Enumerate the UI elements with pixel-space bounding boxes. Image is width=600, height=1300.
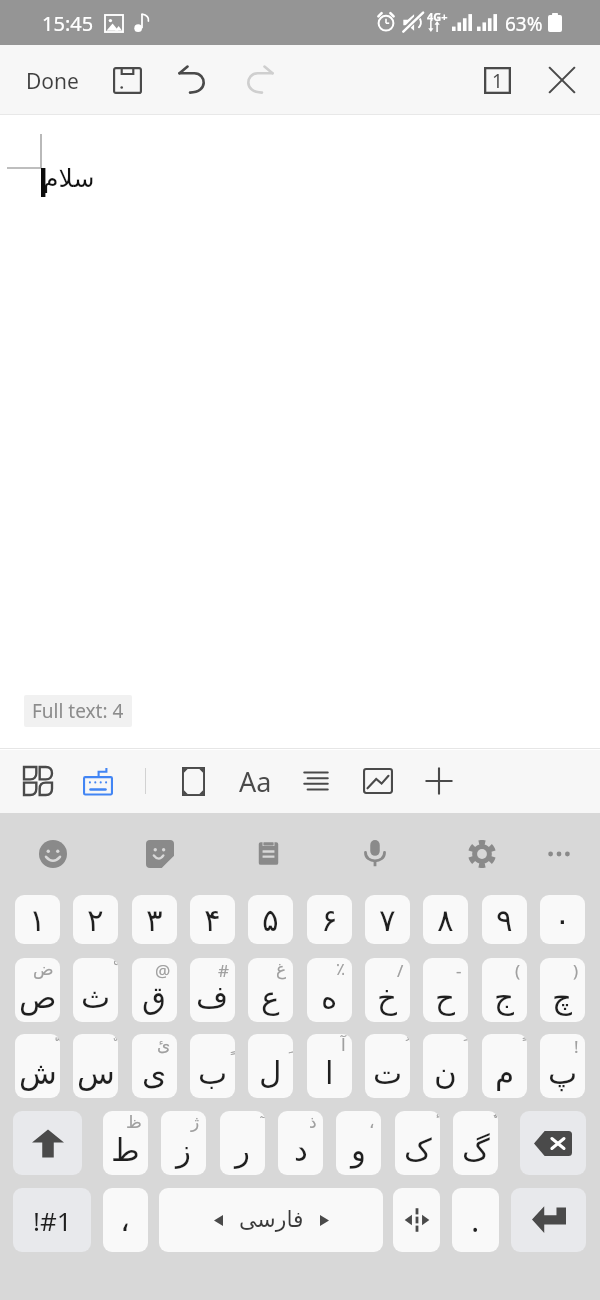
button[interactable]: Page setup bbox=[169, 758, 217, 804]
staticText: م bbox=[495, 1055, 515, 1091]
staticText: ظ bbox=[126, 1112, 142, 1132]
button[interactable]: Move cursor bbox=[393, 1188, 440, 1252]
staticText: ۳ bbox=[146, 902, 163, 938]
button[interactable]: ِ bbox=[248, 1034, 293, 1098]
button[interactable]: َ bbox=[423, 1034, 468, 1098]
staticText: ل bbox=[259, 1055, 282, 1091]
button[interactable]: ُ bbox=[365, 1034, 410, 1098]
button[interactable]: ! bbox=[540, 1034, 585, 1098]
staticText: آ bbox=[341, 1035, 346, 1055]
button[interactable]: Close bbox=[538, 58, 586, 102]
button[interactable]: ّ bbox=[15, 1034, 60, 1098]
button[interactable]: ذ bbox=[278, 1111, 323, 1175]
button[interactable]: More options bbox=[534, 829, 584, 879]
staticText: ۷ bbox=[379, 902, 396, 938]
button[interactable]: . bbox=[452, 1188, 499, 1252]
staticText: خ bbox=[377, 979, 398, 1015]
button[interactable]: ۲ bbox=[73, 895, 118, 944]
staticText: 63% bbox=[505, 11, 543, 37]
staticText: ر bbox=[235, 1132, 250, 1168]
staticText: غ bbox=[276, 959, 287, 979]
staticText: سلام bbox=[43, 164, 95, 193]
staticText: ع bbox=[261, 979, 280, 1015]
staticText: ( bbox=[515, 959, 521, 982]
button[interactable]: ۱ bbox=[15, 895, 60, 944]
staticText: فارسی bbox=[239, 1207, 304, 1233]
button[interactable]: Full text: 4 bbox=[24, 695, 132, 727]
button[interactable]: ٓ bbox=[220, 1111, 265, 1175]
staticText: ، bbox=[369, 1112, 375, 1132]
staticText: گ bbox=[462, 1132, 490, 1168]
button[interactable]: Enter bbox=[511, 1188, 586, 1252]
button[interactable]: Backspace bbox=[520, 1111, 586, 1175]
button[interactable]: Shift bbox=[13, 1111, 82, 1175]
staticText: ی bbox=[142, 1055, 167, 1091]
staticText: چ bbox=[552, 979, 573, 1015]
button[interactable]: ۳ bbox=[132, 895, 177, 944]
button[interactable]: ( bbox=[482, 958, 527, 1022]
staticText: ٪ bbox=[336, 959, 346, 979]
button[interactable]: Redo bbox=[231, 58, 287, 102]
button[interactable]: Apps bbox=[14, 758, 62, 804]
button[interactable]: Done bbox=[14, 58, 91, 105]
button[interactable]: ٪ bbox=[307, 958, 352, 1022]
button[interactable]: ٔ bbox=[395, 1111, 440, 1175]
staticText: ک bbox=[404, 1132, 432, 1168]
button[interactable]: Settings bbox=[457, 829, 507, 879]
button[interactable]: Undo bbox=[164, 58, 220, 102]
button[interactable]: ژ bbox=[161, 1111, 206, 1175]
button[interactable]: ٍ bbox=[190, 1034, 235, 1098]
button[interactable]: ، bbox=[336, 1111, 381, 1175]
button[interactable]: Alignment bbox=[292, 758, 340, 804]
staticText: ف bbox=[196, 979, 229, 1015]
staticText: Full text: 4 bbox=[32, 698, 124, 724]
staticText: ح bbox=[435, 979, 456, 1015]
button[interactable]: Add bbox=[415, 758, 463, 804]
button[interactable]: ٗ bbox=[453, 1111, 498, 1175]
button[interactable]: ً bbox=[482, 1034, 527, 1098]
staticText: ت bbox=[373, 1055, 403, 1091]
button[interactable]: Clipboard bbox=[243, 828, 293, 878]
button[interactable]: ظ bbox=[103, 1111, 148, 1175]
button[interactable]: Insert image bbox=[354, 758, 402, 804]
button[interactable]: ، bbox=[103, 1188, 148, 1252]
button[interactable]: ٌ bbox=[73, 1034, 118, 1098]
button[interactable]: ض bbox=[15, 958, 60, 1022]
staticText: ۴ bbox=[204, 902, 221, 938]
button[interactable]: # bbox=[190, 958, 235, 1022]
button[interactable]: - bbox=[423, 958, 468, 1022]
button[interactable]: Voice input bbox=[350, 828, 400, 878]
button[interactable]: Font bbox=[231, 758, 279, 804]
staticText: ص bbox=[19, 979, 57, 1015]
button[interactable]: فارسی bbox=[159, 1188, 383, 1252]
staticText: ا bbox=[325, 1055, 334, 1091]
button[interactable]: ْ bbox=[73, 958, 118, 1022]
staticText: ۲ bbox=[87, 902, 104, 938]
button[interactable]: غ bbox=[248, 958, 293, 1022]
staticText: ۹ bbox=[496, 902, 513, 938]
button[interactable]: @ bbox=[132, 958, 177, 1022]
staticText: !#1 bbox=[33, 1203, 72, 1238]
button[interactable]: ۹ bbox=[482, 895, 527, 944]
staticText: ئ bbox=[157, 1035, 171, 1055]
staticText: ق bbox=[142, 979, 167, 1015]
button[interactable]: ئ bbox=[132, 1034, 177, 1098]
button[interactable]: !#1 bbox=[13, 1188, 91, 1252]
staticText: ب bbox=[198, 1055, 228, 1091]
staticText: Done bbox=[26, 67, 79, 96]
button[interactable]: ) bbox=[540, 958, 585, 1022]
button[interactable]: ۸ bbox=[423, 895, 468, 944]
button[interactable]: / bbox=[365, 958, 410, 1022]
button[interactable]: ۵ bbox=[248, 895, 293, 944]
button[interactable]: ۴ bbox=[190, 895, 235, 944]
staticText: ز bbox=[176, 1132, 191, 1168]
button[interactable]: آ bbox=[307, 1034, 352, 1098]
button[interactable]: Emoji bbox=[28, 829, 78, 879]
button[interactable]: Page 1 bbox=[473, 58, 521, 102]
button[interactable]: ۰ bbox=[540, 895, 585, 944]
button[interactable]: ۶ bbox=[307, 895, 352, 944]
button[interactable]: ۷ bbox=[365, 895, 410, 944]
button[interactable]: Keyboard bbox=[74, 758, 122, 804]
button[interactable]: Stickers bbox=[135, 829, 185, 879]
button[interactable]: Save bbox=[98, 58, 156, 102]
